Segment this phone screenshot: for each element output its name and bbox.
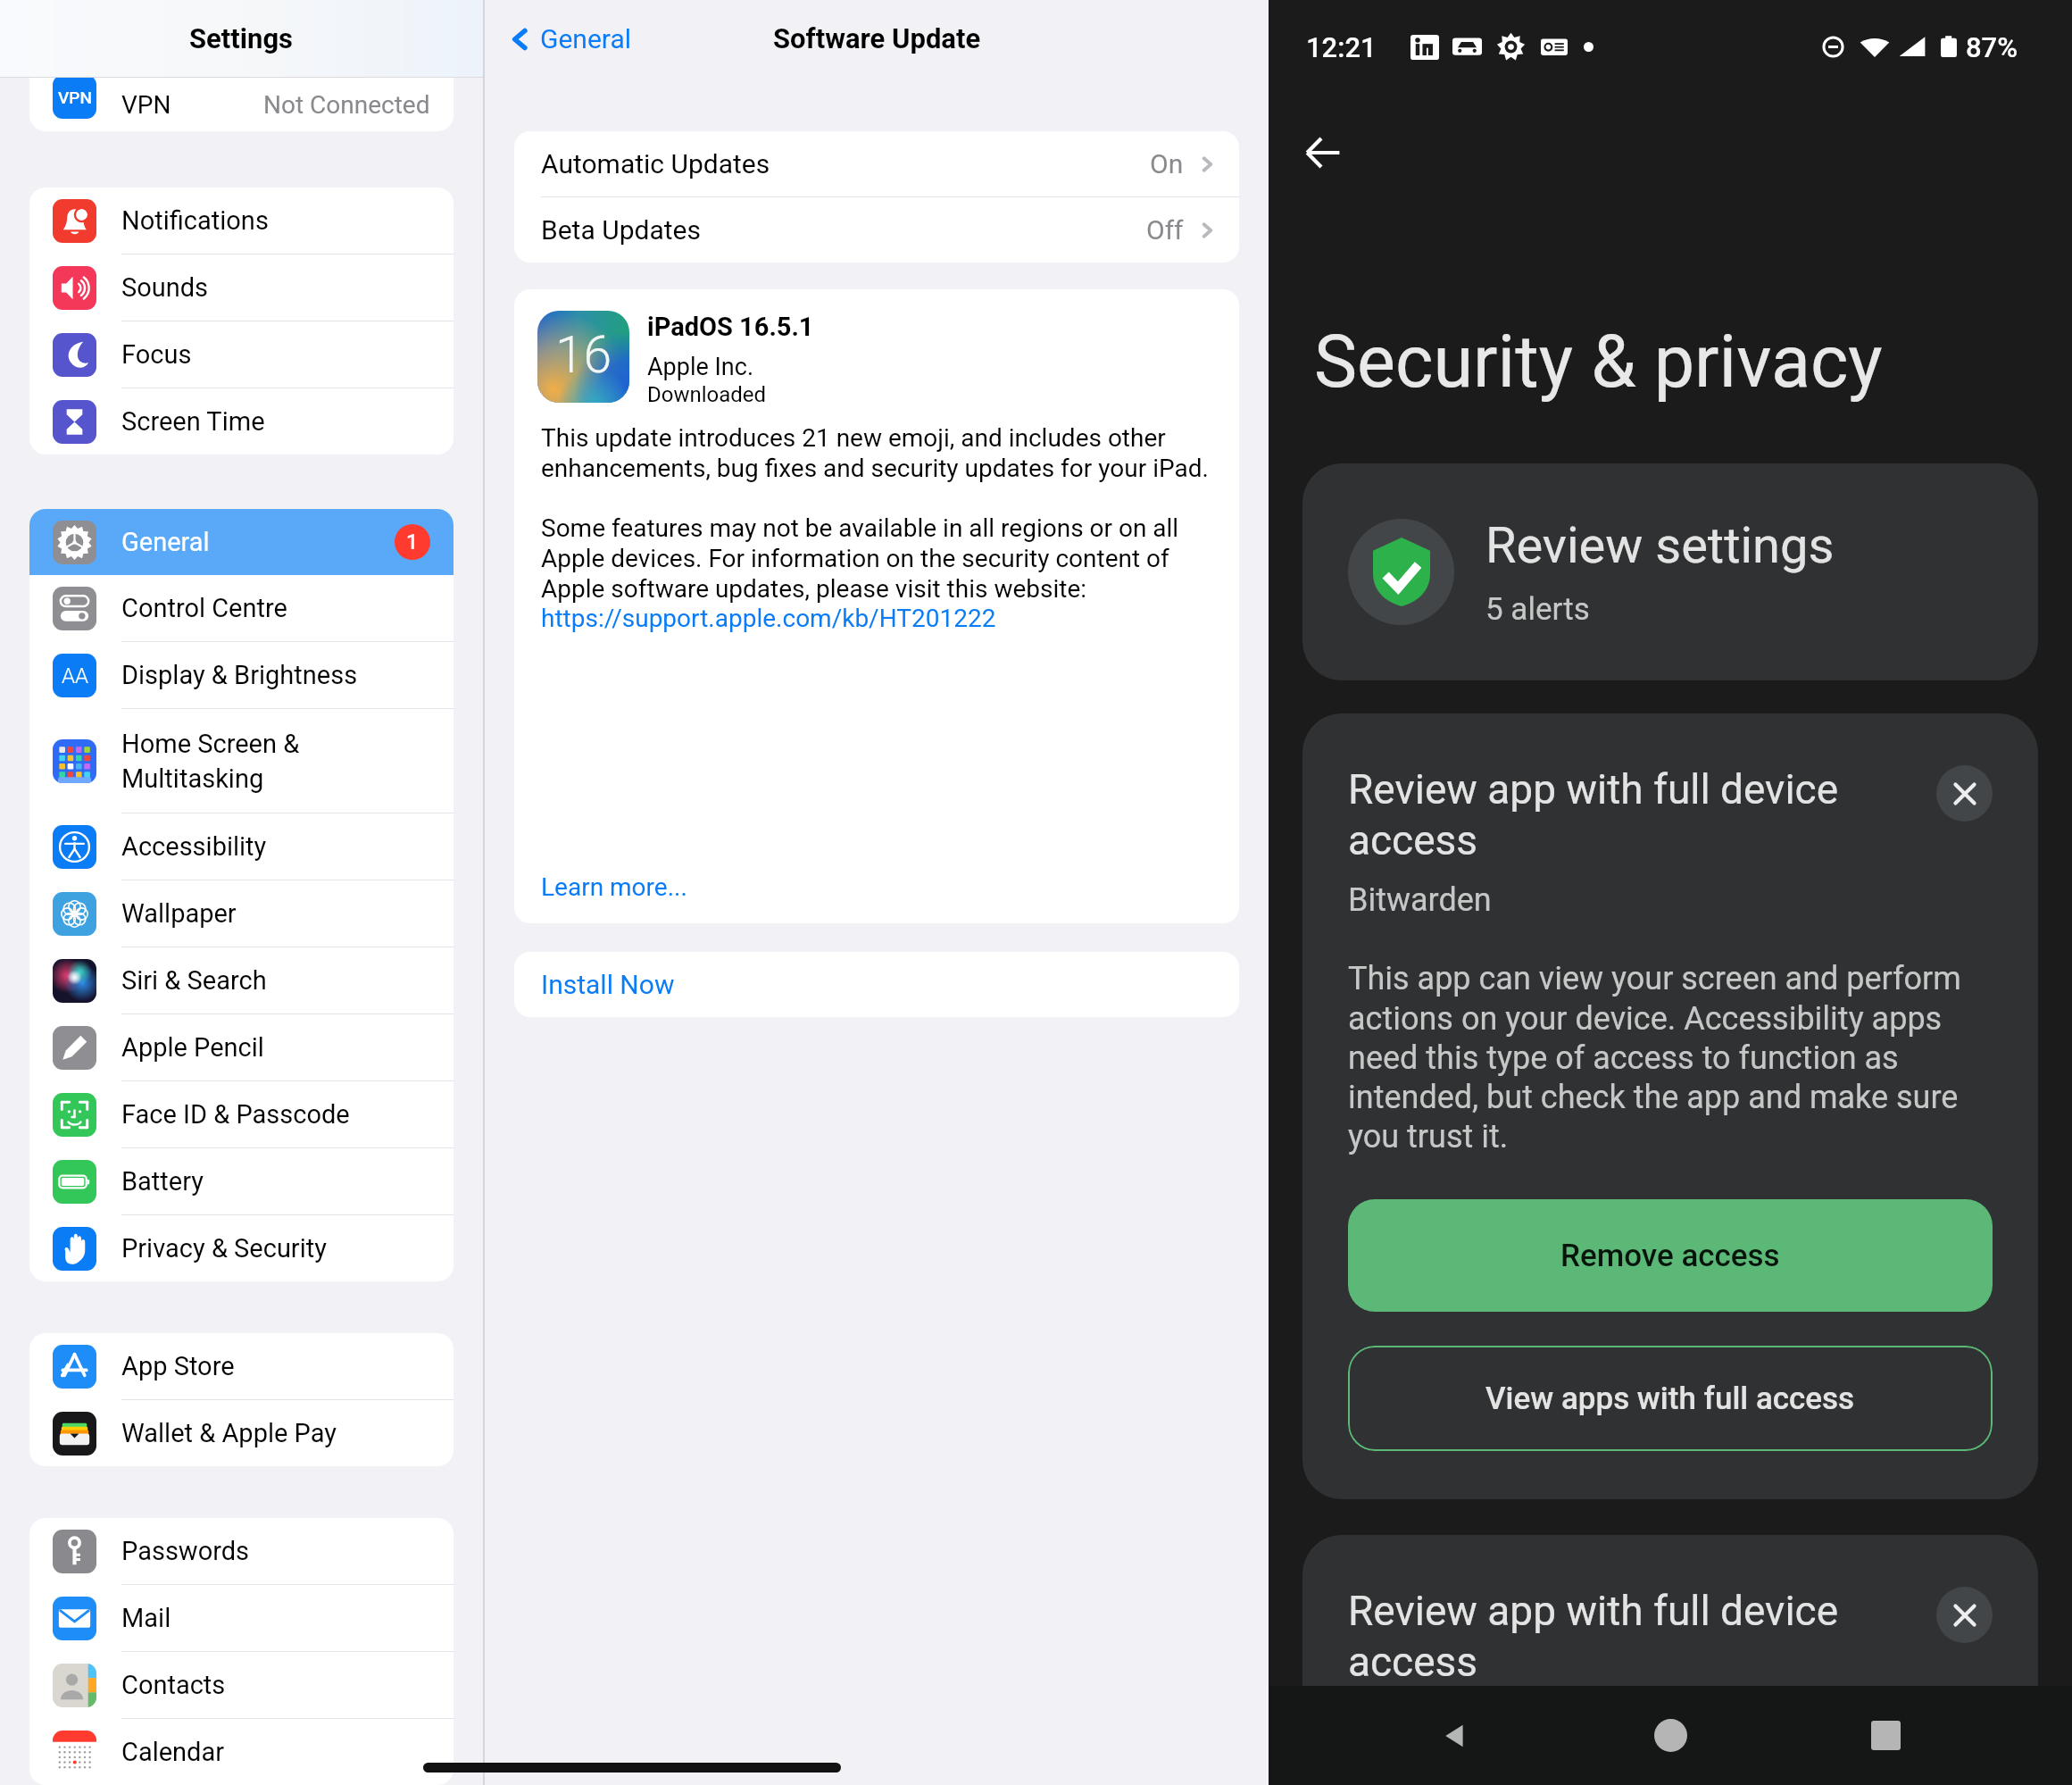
staticText: 5 alerts xyxy=(1485,591,1590,628)
staticText: 1 xyxy=(406,530,419,555)
button[interactable]: General xyxy=(29,509,454,575)
staticText: Settings xyxy=(189,22,294,54)
staticText: Apple Inc. xyxy=(647,353,754,381)
staticText: Security & privacy xyxy=(1314,320,1883,405)
staticText: Focus xyxy=(121,339,192,370)
staticText: Sounds xyxy=(121,272,209,303)
button[interactable]: Back to General xyxy=(499,14,639,63)
button[interactable]: Back xyxy=(1347,1686,1563,1785)
staticText: Passwords xyxy=(121,1536,250,1566)
staticText: Install Now xyxy=(541,969,675,1000)
staticText: Accessibility xyxy=(121,831,267,862)
staticText: Wallpaper xyxy=(121,898,237,929)
button[interactable]: Notifications xyxy=(29,188,454,254)
button[interactable]: Focus xyxy=(29,321,454,388)
staticText: 12:21 xyxy=(1306,31,1377,63)
staticText: Learn more... xyxy=(541,872,687,902)
staticText: Review app with full device access xyxy=(1348,765,1884,864)
button[interactable]: Remove access xyxy=(1348,1199,1993,1312)
staticText: Contacts xyxy=(121,1670,226,1700)
button[interactable]: Mail xyxy=(29,1585,454,1651)
staticText: Automatic Updates xyxy=(541,148,770,179)
staticText: Not Connected xyxy=(263,90,430,120)
button[interactable]: Dismiss xyxy=(1936,1587,1993,1643)
staticText: Wallet & Apple Pay xyxy=(121,1418,337,1448)
staticText: Battery xyxy=(121,1166,204,1197)
button[interactable]: Learn more... xyxy=(541,871,687,904)
staticText: 87% xyxy=(1966,31,2018,63)
staticText: Mail xyxy=(121,1603,171,1633)
button[interactable]: Passwords xyxy=(29,1518,454,1584)
button[interactable]: Control Centre xyxy=(29,575,454,641)
staticText: Remove access xyxy=(1560,1238,1780,1274)
button[interactable]: VPN xyxy=(29,78,454,131)
button[interactable]: Wallet & Apple Pay xyxy=(29,1400,454,1466)
button[interactable]: AA xyxy=(29,642,454,708)
button[interactable]: Privacy & Security xyxy=(29,1215,454,1281)
button[interactable]: Home xyxy=(1563,1686,1778,1785)
staticText: On xyxy=(1150,148,1184,179)
staticText: Apple Pencil xyxy=(121,1032,264,1063)
button[interactable]: Automatic Updates xyxy=(514,131,1239,196)
staticText: Privacy & Security xyxy=(121,1233,327,1264)
staticText: This app can view your screen and perfor… xyxy=(1348,960,1993,1155)
button[interactable]: Recents xyxy=(1778,1686,1993,1785)
button[interactable]: Face ID & Passcode xyxy=(29,1081,454,1147)
button[interactable]: Beta Updates xyxy=(514,197,1239,263)
staticText: Display & Brightness xyxy=(121,660,358,690)
staticText: AA xyxy=(62,663,88,688)
staticText: VPN xyxy=(121,90,171,120)
staticText: Software Update xyxy=(773,22,981,54)
button[interactable]: Install Now xyxy=(514,952,1239,1017)
staticText: 16 xyxy=(555,325,612,385)
button[interactable]: Battery xyxy=(29,1148,454,1214)
button[interactable]: Screen Time xyxy=(29,388,454,455)
staticText: Siri & Search xyxy=(121,965,267,996)
button[interactable]: Review settings xyxy=(1302,463,2038,680)
button[interactable]: Dismiss xyxy=(1936,765,1993,822)
staticText: Review settings xyxy=(1485,516,1835,575)
staticText: https://support.apple.com/kb/HT201222 xyxy=(541,604,996,633)
staticText: Bitwarden xyxy=(1348,881,1492,919)
staticText: Screen Time xyxy=(121,406,265,437)
button[interactable]: App Store xyxy=(29,1333,454,1399)
staticText: Some features may not be available in al… xyxy=(541,513,1212,604)
button[interactable]: Accessibility xyxy=(29,813,454,880)
button[interactable]: Apple Pencil xyxy=(29,1014,454,1080)
button[interactable]: Home Screen & Multitasking xyxy=(29,709,454,813)
button[interactable]: Calendar xyxy=(29,1719,454,1785)
staticText: Notifications xyxy=(121,205,269,236)
staticText: App Store xyxy=(121,1351,235,1381)
staticText: Face ID & Passcode xyxy=(121,1099,350,1130)
staticText: Home Screen & Multitasking xyxy=(121,729,300,794)
staticText: This update introduces 21 new emoji, and… xyxy=(541,423,1212,483)
staticText: View apps with full access xyxy=(1485,1380,1855,1417)
staticText: Calendar xyxy=(121,1737,225,1767)
staticText: Beta Updates xyxy=(541,214,701,246)
staticText: Control Centre xyxy=(121,593,287,623)
button[interactable]: View apps with full access xyxy=(1348,1346,1993,1451)
button[interactable]: Siri & Search xyxy=(29,947,454,1013)
staticText: General xyxy=(540,23,632,54)
staticText: General xyxy=(121,527,210,557)
button[interactable]: https://support.apple.com/kb/HT201222 xyxy=(541,604,996,633)
button[interactable]: Contacts xyxy=(29,1652,454,1718)
staticText: iPadOS 16.5.1 xyxy=(647,312,814,342)
button[interactable]: Wallpaper xyxy=(29,880,454,947)
button[interactable]: Sounds xyxy=(29,254,454,321)
staticText: VPN xyxy=(58,88,92,107)
staticText: Off xyxy=(1146,214,1184,246)
staticText: Downloaded xyxy=(647,382,767,407)
staticText: Review app with full device access xyxy=(1348,1587,1884,1686)
button[interactable]: Back xyxy=(1294,124,1352,181)
